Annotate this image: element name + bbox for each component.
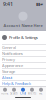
staticText: Me [39, 92, 43, 95]
staticText: Privacy [2, 57, 15, 62]
button[interactable]: Home [0, 87, 9, 96]
button[interactable]: Chat [18, 87, 27, 96]
staticText: Notifications [2, 51, 23, 56]
staticText: Appearance [2, 63, 23, 68]
button[interactable]: Alerts [27, 87, 36, 96]
staticText: Chat [20, 92, 26, 95]
button[interactable]: About [0, 75, 46, 80]
staticText: General [2, 45, 16, 50]
staticText: Search [10, 92, 18, 95]
staticText: Home [1, 92, 9, 95]
button[interactable]: Storage [0, 69, 46, 74]
button[interactable]: Notifications [0, 51, 46, 56]
staticText: Account Name Here [3, 23, 42, 28]
staticText: Storage [2, 69, 15, 74]
button[interactable]: Profile & Settings [0, 31, 46, 44]
button[interactable]: General [0, 45, 46, 50]
staticText: About [2, 75, 12, 80]
staticText: Profile & Settings [9, 35, 38, 40]
button[interactable]: Privacy [0, 57, 46, 62]
button[interactable]: Appearance [0, 63, 46, 68]
button[interactable]: Me [36, 87, 45, 96]
button[interactable]: Search [9, 87, 18, 96]
staticText: ▮▮▰ [36, 2, 43, 6]
button[interactable]: Help & Feedback [0, 81, 46, 86]
staticText: 9:41 [3, 0, 13, 8]
staticText: Alerts [28, 92, 36, 95]
staticText: Help & Feedback [2, 81, 31, 86]
